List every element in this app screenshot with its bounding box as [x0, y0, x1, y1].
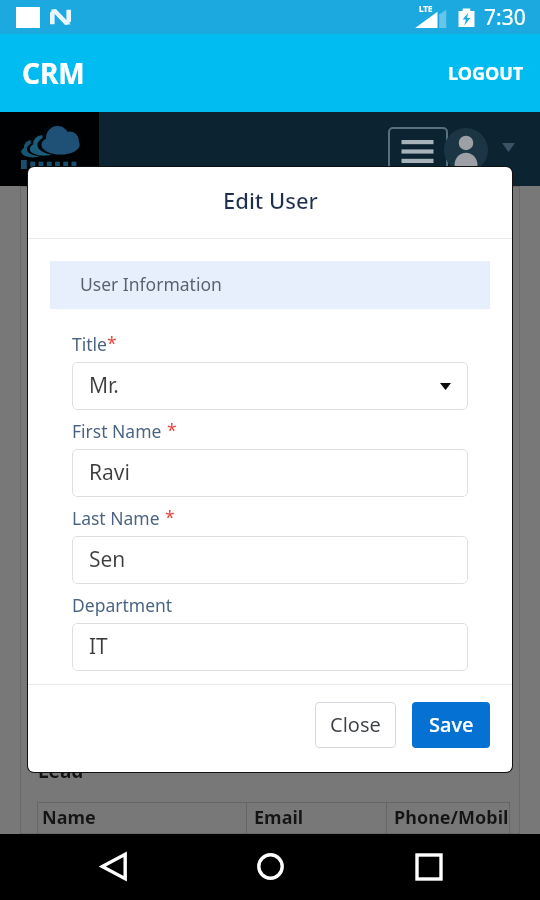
- button[interactable]: Home: [242, 838, 299, 895]
- staticText: LOGOUT: [448, 61, 524, 86]
- staticText: Email: [254, 805, 304, 830]
- other: More: [502, 143, 515, 152]
- button[interactable]: Back: [85, 838, 142, 895]
- staticText: 7:30: [484, 3, 526, 32]
- staticText: Phone/Mobile: [394, 805, 510, 830]
- button[interactable]: LOGOUT: [446, 55, 526, 92]
- staticText: Last Name: [72, 506, 160, 529]
- button[interactable]: Menu: [388, 127, 448, 179]
- staticText: Mr.: [89, 371, 119, 400]
- staticText: *: [167, 418, 177, 441]
- staticText: Edit User: [223, 185, 318, 215]
- button[interactable]: Ravi: [72, 449, 468, 497]
- staticText: IT: [89, 632, 108, 661]
- button[interactable]: Close: [315, 702, 396, 748]
- staticText: Department: [72, 593, 173, 616]
- staticText: Ravi: [89, 458, 130, 487]
- staticText: Title: [72, 332, 107, 355]
- button[interactable]: Mr.: [72, 362, 468, 410]
- button[interactable]: Account: [444, 128, 488, 172]
- staticText: Save: [429, 711, 474, 738]
- staticText: Close: [330, 711, 381, 738]
- button[interactable]: Recents: [400, 838, 457, 895]
- button[interactable]: Save: [412, 702, 490, 748]
- staticText: Lead: [38, 758, 84, 784]
- staticText: Sen: [89, 545, 126, 574]
- staticText: Name: [42, 805, 96, 830]
- button[interactable]: Sen: [72, 536, 468, 584]
- staticText: LTE: [419, 3, 433, 14]
- staticText: *: [107, 331, 117, 354]
- staticText: User Information: [80, 272, 222, 296]
- staticText: CRM: [22, 54, 85, 92]
- staticText: *: [165, 505, 175, 528]
- button[interactable]: IT: [72, 623, 468, 671]
- staticText: First Name: [72, 419, 162, 442]
